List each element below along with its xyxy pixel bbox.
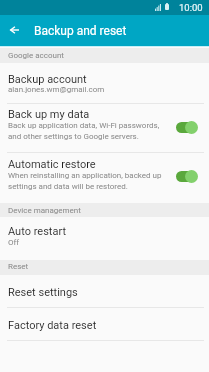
staticText: alan.jones.wm@gmail.com <box>8 85 105 94</box>
button[interactable]: Backup account <box>0 63 209 103</box>
staticText: Backup and reset <box>34 24 127 38</box>
staticText: When reinstalling an application, backed… <box>8 171 162 191</box>
staticText: Automatic restore <box>8 158 96 171</box>
staticText: 10:00 <box>179 2 203 13</box>
staticText: Reset <box>8 262 29 271</box>
button[interactable]: Reset settings <box>0 275 209 307</box>
staticText: Google account <box>8 51 64 60</box>
staticText: Off <box>8 238 20 247</box>
button[interactable]: Switch, on <box>176 121 198 134</box>
staticText: Back up my data <box>8 108 90 121</box>
staticText: Back up application data, Wi-Fi password… <box>8 121 160 141</box>
button[interactable]: Back up my data <box>0 104 209 152</box>
staticText: Backup account <box>8 73 87 86</box>
button[interactable]: Switch, on <box>176 170 198 183</box>
button[interactable]: Factory data reset <box>0 307 209 340</box>
button[interactable]: Auto restart <box>0 217 209 260</box>
button[interactable]: Navigate up <box>0 15 30 47</box>
staticText: Device management <box>8 206 81 215</box>
staticText: Auto restart <box>8 225 66 238</box>
staticText: Reset settings <box>8 286 78 299</box>
staticText: Factory data reset <box>8 319 97 332</box>
button[interactable]: Automatic restore <box>0 152 209 203</box>
